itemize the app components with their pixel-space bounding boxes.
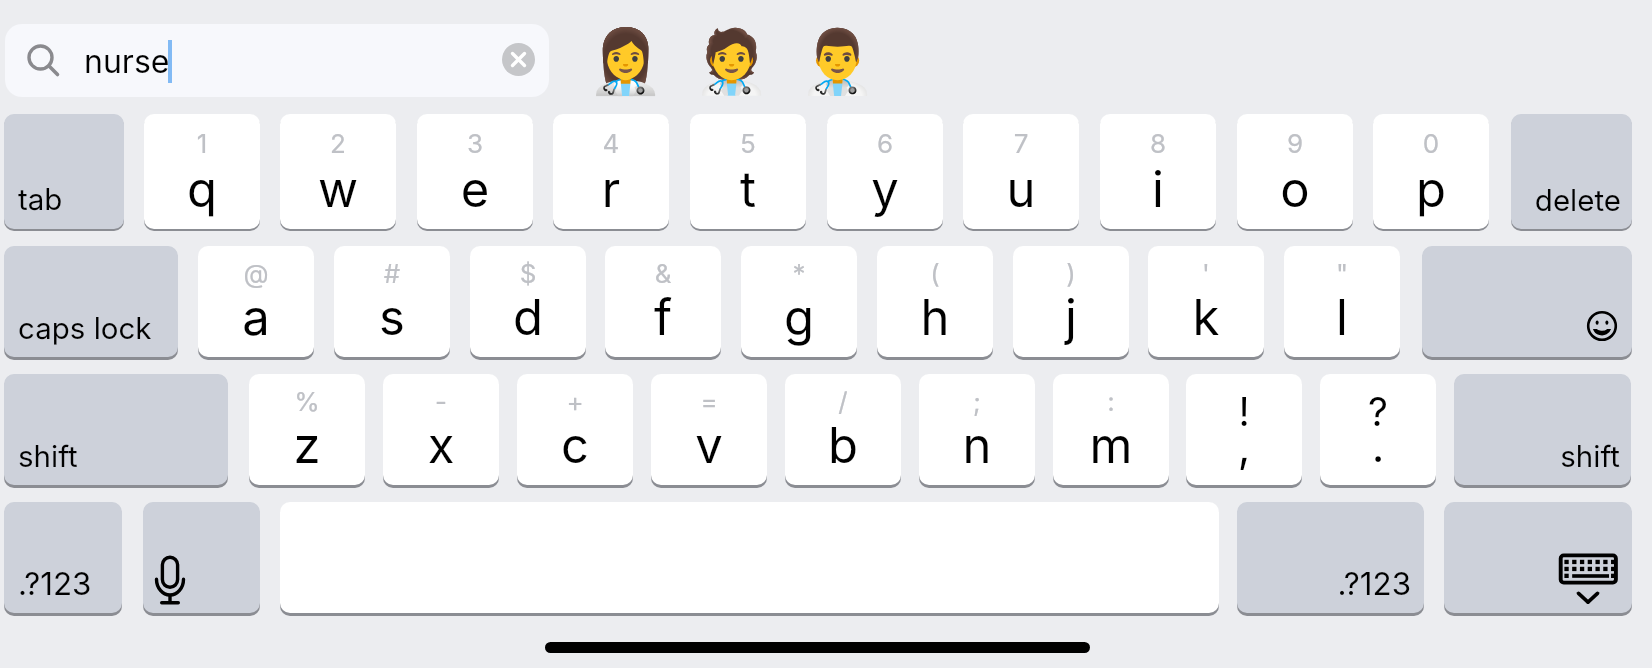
staticText: caps lock: [18, 310, 164, 354]
staticText: shift: [18, 438, 214, 482]
other: Hide keyboard: [1444, 502, 1632, 613]
staticText: 0: [1373, 128, 1489, 167]
button[interactable]: 7: [963, 114, 1079, 229]
button[interactable]: 5: [690, 114, 806, 229]
staticText: b: [785, 416, 901, 485]
staticText: p: [1373, 160, 1489, 229]
button[interactable]: Emoji: [1422, 246, 1632, 357]
button[interactable]: =: [651, 374, 767, 485]
staticText: 8: [1100, 128, 1216, 167]
staticText: x: [383, 416, 499, 485]
staticText: 7: [963, 128, 1079, 167]
button[interactable]: tab: [4, 114, 124, 229]
button[interactable]: ': [1148, 246, 1264, 357]
button[interactable]: 3: [417, 114, 533, 229]
button[interactable]: ?: [1320, 374, 1436, 485]
button[interactable]: %: [249, 374, 365, 485]
button[interactable]: /: [785, 374, 901, 485]
button[interactable]: +: [517, 374, 633, 485]
staticText: %: [249, 386, 365, 425]
staticText: @: [198, 258, 314, 297]
button[interactable]: 1: [144, 114, 260, 229]
staticText: l: [1284, 288, 1400, 357]
staticText: j: [1013, 288, 1129, 357]
button[interactable]: 0: [1373, 114, 1489, 229]
staticText: 4: [553, 128, 669, 167]
staticText: .: [1320, 419, 1436, 485]
staticText: shift: [1465, 438, 1620, 482]
staticText: &: [605, 258, 721, 297]
button[interactable]: shift: [4, 374, 228, 485]
staticText: -: [383, 386, 499, 425]
staticText: ;: [919, 386, 1035, 425]
button[interactable]: 🧑‍⚕️: [693, 25, 765, 107]
staticText: 3: [417, 128, 533, 167]
staticText: f: [605, 288, 721, 357]
button[interactable]: shift: [1454, 374, 1631, 485]
staticText: a: [198, 288, 314, 357]
staticText: v: [651, 416, 767, 485]
button[interactable]: 👨‍⚕️: [799, 25, 871, 107]
staticText: s: [334, 288, 450, 357]
staticText: n: [919, 416, 1035, 485]
staticText: 5: [690, 128, 806, 167]
button[interactable]: *: [741, 246, 857, 357]
staticText: o: [1237, 160, 1353, 229]
staticText: (: [877, 258, 993, 297]
button[interactable]: Hide keyboard: [1444, 502, 1632, 613]
button[interactable]: Dictation: [143, 502, 260, 613]
button[interactable]: delete: [1511, 114, 1632, 229]
staticText: h: [877, 288, 993, 357]
staticText: delete: [1522, 182, 1621, 226]
button[interactable]: .?123: [1237, 502, 1424, 613]
staticText: u: [963, 160, 1079, 229]
button[interactable]: 8: [1100, 114, 1216, 229]
staticText: tab: [18, 181, 110, 225]
button[interactable]: 2: [280, 114, 396, 229]
staticText: ,: [1186, 419, 1302, 485]
button[interactable]: 👩‍⚕️: [587, 25, 659, 107]
other: Dictation: [143, 502, 260, 613]
button[interactable]: .?123: [4, 502, 122, 613]
staticText: q: [144, 160, 260, 229]
button[interactable]: 6: [827, 114, 943, 229]
button[interactable]: !: [1186, 374, 1302, 485]
button[interactable]: Search emoji: [5, 24, 549, 97]
button[interactable]: #: [334, 246, 450, 357]
button[interactable]: (: [877, 246, 993, 357]
button[interactable]: 9: [1237, 114, 1353, 229]
staticText: 9: [1237, 128, 1353, 167]
button[interactable]: ;: [919, 374, 1035, 485]
button[interactable]: ": [1284, 246, 1400, 357]
staticText: .?123: [18, 565, 108, 612]
staticText: +: [517, 386, 633, 425]
staticText: *: [741, 258, 857, 297]
staticText: r: [553, 160, 669, 229]
button[interactable]: Clear text: [502, 43, 535, 76]
staticText: z: [249, 416, 365, 485]
staticText: k: [1148, 288, 1264, 357]
button[interactable]: ): [1013, 246, 1129, 357]
staticText: ?: [1320, 388, 1436, 447]
staticText: #: [334, 258, 450, 297]
button[interactable]: &: [605, 246, 721, 357]
button[interactable]: :: [1053, 374, 1169, 485]
staticText: i: [1100, 160, 1216, 229]
button[interactable]: -: [383, 374, 499, 485]
button[interactable]: $: [470, 246, 586, 357]
staticText: nurse: [84, 42, 170, 81]
staticText: t: [690, 160, 806, 229]
staticText: 👨‍⚕️: [799, 25, 871, 98]
staticText: /: [785, 386, 901, 425]
staticText: .?123: [1250, 565, 1411, 612]
staticText: ': [1148, 258, 1264, 297]
staticText: =: [651, 386, 767, 425]
staticText: !: [1186, 388, 1302, 447]
staticText: 6: [827, 128, 943, 167]
button[interactable]: 4: [553, 114, 669, 229]
button[interactable]: caps lock: [4, 246, 178, 357]
staticText: w: [280, 160, 396, 229]
button[interactable]: @: [198, 246, 314, 357]
